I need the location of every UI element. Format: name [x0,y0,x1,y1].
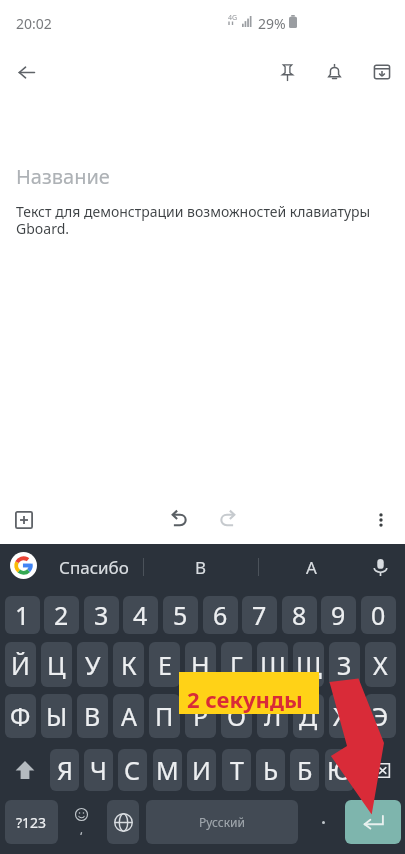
button[interactable]: В [77,694,108,738]
staticText: 5 [173,598,188,632]
staticText: 2 секунды [187,684,303,714]
button[interactable]: О [221,694,252,738]
button[interactable]: У [77,642,108,687]
staticText: Б [297,753,313,787]
button[interactable]: В [144,544,258,590]
button[interactable]: Ж [329,694,360,738]
staticText: 20:02 [16,14,52,33]
staticText: Ф [10,699,31,733]
button[interactable]: 4 [123,596,158,634]
button[interactable]: Ч [84,749,113,791]
button[interactable]: More options [361,500,401,540]
staticText: Название [16,163,110,190]
button[interactable]: 6 [203,596,238,634]
staticText: ?123 [16,813,47,832]
staticText: 3 [94,598,109,632]
button[interactable]: Х [365,642,396,687]
button[interactable]: Add [4,500,44,540]
button[interactable]: 0 [361,596,396,634]
staticText: 4G [228,13,238,23]
button[interactable]: Google [10,552,37,579]
staticText: А [121,699,137,733]
button[interactable]: Archive [358,48,405,96]
staticText: Ш [260,648,286,682]
staticText: Э [372,699,389,733]
staticText: Р [193,699,209,733]
button[interactable]: Emoji [63,800,99,844]
staticText: 0 [371,598,386,632]
button[interactable]: Backspace [358,749,400,791]
button[interactable]: П [149,694,180,738]
staticText: Я [57,753,73,787]
button[interactable]: Ф [5,694,36,738]
button[interactable]: И [187,749,216,791]
button[interactable]: 8 [282,596,317,634]
button[interactable]: Voice input [366,553,394,581]
button[interactable]: М [153,749,182,791]
staticText: К [121,648,137,682]
button[interactable]: А [113,694,144,738]
button[interactable]: Ц [41,642,72,687]
button[interactable]: Р [185,694,216,738]
button[interactable]: Г [221,642,252,687]
button[interactable]: 5 [163,596,198,634]
button[interactable]: 1 [5,596,40,634]
staticText: Г [230,648,243,682]
staticText: , [80,822,83,837]
button[interactable]: Е [149,642,180,687]
staticText: С [124,753,141,787]
button[interactable]: Enter [345,800,401,844]
button[interactable]: Й [5,642,36,687]
button[interactable]: Undo [158,496,202,540]
button[interactable]: Shift [5,749,45,791]
staticText: В [195,556,207,579]
button[interactable] [305,800,341,844]
button[interactable]: К [113,642,144,687]
staticText: Е [158,648,172,682]
staticText: 1 [15,598,30,632]
staticText: 29% [258,14,286,33]
button[interactable]: Add reminder [310,48,358,96]
button[interactable]: Б [290,749,319,791]
button[interactable]: 9 [321,596,356,634]
staticText: Ж [333,699,356,733]
button[interactable]: Спасибо [44,544,143,590]
button[interactable]: Н [185,642,216,687]
staticText: П [155,699,174,733]
button[interactable]: Я [50,749,79,791]
staticText: Х [373,648,388,682]
button[interactable]: 7 [242,596,277,634]
button[interactable]: Back [2,48,50,96]
staticText: З [337,648,352,682]
staticText: Н [191,648,210,682]
staticText: 2 [54,598,69,632]
staticText: 9 [331,598,346,632]
staticText: Ч [90,753,107,787]
button[interactable]: ?123 [5,800,58,844]
button[interactable]: Русский [146,800,298,844]
button[interactable]: С [118,749,147,791]
button[interactable]: Щ [293,642,324,687]
button[interactable]: А [259,544,364,590]
button[interactable]: Д [293,694,324,738]
button[interactable]: Т [222,749,251,791]
staticText: Щ [296,648,322,682]
button[interactable]: Ш [257,642,288,687]
button[interactable]: Ы [41,694,72,738]
button[interactable]: Ю [325,749,354,791]
button[interactable]: Pin [263,48,311,96]
button[interactable]: 3 [84,596,119,634]
button[interactable]: Э [365,694,396,738]
button[interactable]: Ь [256,749,285,791]
button[interactable]: Л [257,694,288,738]
button[interactable]: Redo [205,496,249,540]
button[interactable]: З [329,642,360,687]
button[interactable]: Language [107,800,139,844]
staticText: Текст для демонстрации возможностей клав… [16,202,386,238]
staticText: И [192,753,211,787]
staticText: А [306,556,317,579]
staticText: Л [264,699,282,733]
staticText: Й [11,648,30,682]
button[interactable]: 2 [44,596,79,634]
staticText: 8 [292,598,307,632]
